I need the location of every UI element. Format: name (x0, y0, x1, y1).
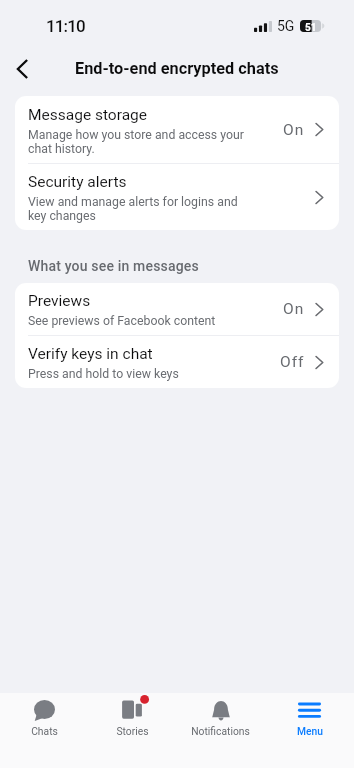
staticText: On (283, 121, 305, 139)
button[interactable]: Chats (0, 693, 88, 737)
staticText: See previews of Facebook content (28, 314, 216, 328)
button[interactable]: Message storage (15, 96, 339, 163)
staticText: Menu (297, 725, 323, 737)
staticText: Chats (31, 725, 58, 737)
staticText: Press and hold to view keys (28, 367, 179, 381)
staticText: 11:10 (46, 16, 85, 36)
button[interactable]: Stories (88, 693, 176, 737)
button[interactable]: Menu (265, 693, 354, 737)
button[interactable]: Verify keys in chat (15, 336, 339, 388)
button[interactable]: Previews (15, 283, 339, 335)
staticText: Security alerts (28, 173, 127, 191)
staticText: 51 (305, 22, 317, 34)
staticText: End-to-end encrypted chats (75, 59, 279, 78)
staticText: What you see in messages (28, 258, 199, 274)
button[interactable]: Security alerts (15, 164, 339, 230)
staticText: Notifications (191, 725, 250, 737)
staticText: Off (280, 353, 305, 371)
staticText: View and manage alerts for logins and ke… (28, 195, 238, 223)
staticText: Manage how you store and access your cha… (28, 128, 244, 156)
staticText: 5G (277, 18, 295, 34)
staticText: On (283, 300, 305, 318)
button[interactable]: Notifications (176, 693, 265, 737)
staticText: Verify keys in chat (28, 345, 153, 363)
staticText: Previews (28, 292, 91, 310)
staticText: Message storage (28, 106, 148, 124)
staticText: Stories (116, 725, 149, 737)
button[interactable]: Back (4, 51, 40, 87)
